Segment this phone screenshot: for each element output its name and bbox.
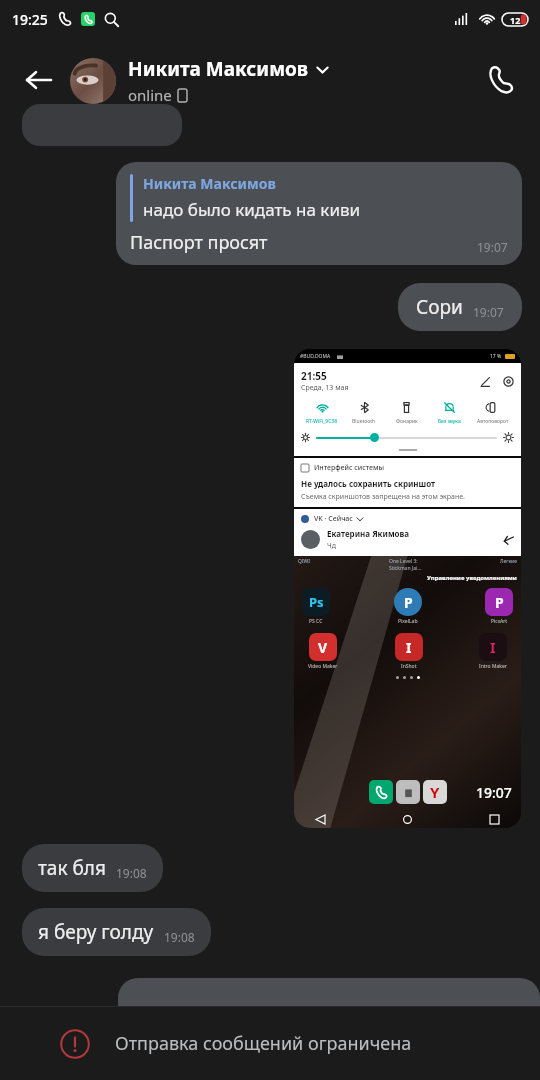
button[interactable]: I	[479, 633, 507, 661]
staticText: V	[318, 638, 328, 657]
staticText: 19:07	[477, 239, 508, 255]
button[interactable]: Back	[14, 56, 62, 104]
button[interactable]: Call	[476, 55, 526, 105]
staticText: Никита Максимов	[128, 56, 309, 82]
button[interactable]: Сори	[398, 283, 522, 331]
button[interactable]: Отправка сообщений ограничена	[60, 1007, 540, 1080]
staticText: Ps	[309, 593, 324, 611]
staticText: Среда, 13 мая	[301, 383, 349, 393]
staticText: так бля	[38, 855, 106, 881]
staticText: online	[128, 85, 172, 105]
staticText: PicsArt	[491, 618, 508, 625]
staticText: Без звука	[438, 418, 461, 425]
staticText: 19:07	[476, 783, 512, 802]
staticText: Автоповорот	[477, 418, 509, 425]
button[interactable]: Ps	[302, 588, 330, 616]
staticText: VK · Сейчас	[314, 514, 353, 524]
staticText: надо было кидать на киви	[143, 198, 361, 221]
staticText: Съемка скриншотов запрещена на этом экра…	[301, 492, 465, 502]
button[interactable]	[22, 104, 182, 146]
staticText: InShot	[401, 663, 417, 670]
staticText: P	[404, 593, 413, 612]
staticText: я беру голду	[38, 919, 154, 945]
staticText: Никита Максимов	[143, 174, 276, 193]
staticText: PS CC	[309, 618, 323, 625]
staticText: Bluetooth	[352, 418, 376, 425]
staticText: Video Maker	[308, 663, 338, 670]
staticText: 19:07	[473, 304, 504, 320]
button[interactable]	[118, 978, 540, 1006]
staticText: Intro Maker	[479, 663, 507, 670]
staticText: Паспорт просят	[130, 230, 268, 255]
staticText: I	[490, 638, 496, 657]
staticText: 21:55	[301, 369, 327, 383]
staticText: Y	[430, 782, 440, 802]
button[interactable]: Никита Максимов	[116, 162, 522, 265]
staticText: 12	[510, 14, 521, 26]
staticText: P	[495, 593, 504, 612]
staticText: Отправка сообщений ограничена	[115, 1031, 412, 1056]
button[interactable]: P	[394, 588, 422, 616]
button[interactable]: я беру голду	[22, 908, 211, 956]
staticText: Екатерина Якимова	[327, 528, 410, 539]
staticText: Сори	[416, 294, 463, 320]
button[interactable]: Никита Максимов	[70, 56, 476, 105]
button[interactable]: так бля	[22, 844, 163, 892]
button[interactable]: V	[309, 633, 337, 661]
staticText: 17 %	[490, 353, 502, 360]
staticText: Не удалось сохранить скриншот	[301, 478, 436, 489]
staticText: 19:25	[12, 10, 48, 29]
button[interactable]: I	[395, 633, 423, 661]
staticText: I	[406, 638, 412, 657]
staticText: #BUD,DOMA	[300, 353, 331, 360]
staticText: Управление уведомлениями	[427, 574, 517, 582]
staticText: Легкие	[500, 558, 517, 565]
staticText: QIWI	[298, 558, 310, 565]
staticText: One Level 3: Stickman Jai...	[389, 558, 422, 572]
staticText: 19:08	[116, 865, 147, 881]
button[interactable]: P	[485, 588, 513, 616]
staticText: Интерфейс системы	[314, 463, 384, 473]
staticText: Фонарик	[396, 418, 418, 425]
button[interactable]: Photo	[294, 349, 521, 828]
staticText: 19:08	[164, 929, 195, 945]
staticText: Чд	[327, 541, 336, 551]
staticText: RT-WiFi_9C38	[306, 418, 338, 425]
staticText: PixelLab	[398, 618, 418, 625]
